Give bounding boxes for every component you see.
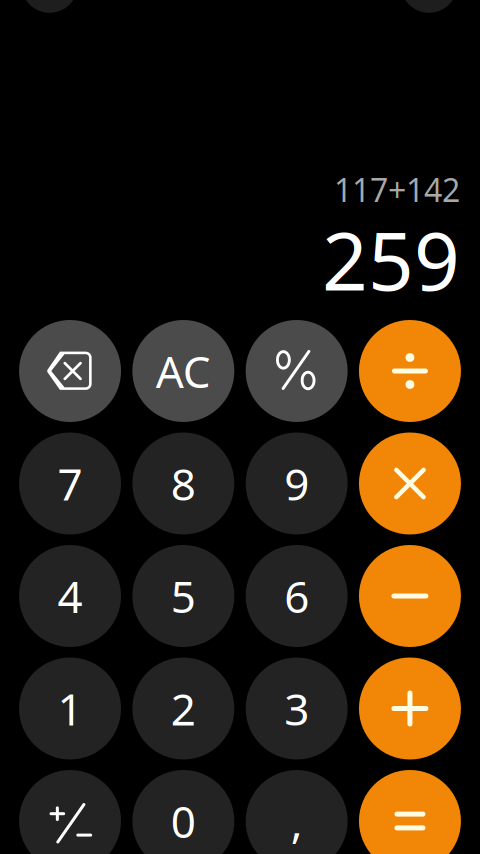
staticText: 9 xyxy=(284,454,309,513)
button[interactable]: 7 xyxy=(19,432,121,534)
staticText: , xyxy=(291,792,303,850)
staticText: 1 xyxy=(58,679,83,738)
staticText: AC xyxy=(156,342,211,400)
button[interactable]: 0 xyxy=(132,770,234,854)
button[interactable]: Divide xyxy=(359,320,461,422)
staticText: 8 xyxy=(171,454,196,513)
button[interactable]: Subtract xyxy=(359,545,461,647)
button[interactable]: 9 xyxy=(246,432,348,534)
button[interactable]: Equals xyxy=(359,770,461,854)
staticText: 6 xyxy=(284,567,309,625)
staticText: 0 xyxy=(171,792,196,850)
button[interactable]: Percent xyxy=(246,320,348,422)
staticText: 7 xyxy=(58,454,83,513)
staticText: 4 xyxy=(58,567,83,625)
staticText: 117+142 xyxy=(334,168,460,211)
button[interactable]: Delete xyxy=(19,320,121,422)
staticText: 259 xyxy=(322,206,460,313)
staticText: 3 xyxy=(284,679,309,738)
button[interactable]: 4 xyxy=(19,545,121,647)
button[interactable]: 3 xyxy=(246,657,348,759)
button[interactable]: Add xyxy=(359,657,461,759)
button[interactable]: 1 xyxy=(19,657,121,759)
button[interactable]: 2 xyxy=(132,657,234,759)
button[interactable]: 5 xyxy=(132,545,234,647)
button[interactable]: Multiply xyxy=(359,432,461,534)
button[interactable]: All Clear xyxy=(132,320,234,422)
staticText: 5 xyxy=(171,567,196,625)
button[interactable]: Decimal xyxy=(246,770,348,854)
staticText: 2 xyxy=(171,679,196,738)
button[interactable]: 8 xyxy=(132,432,234,534)
button[interactable]: Plus Minus xyxy=(19,770,121,854)
button[interactable]: 6 xyxy=(246,545,348,647)
